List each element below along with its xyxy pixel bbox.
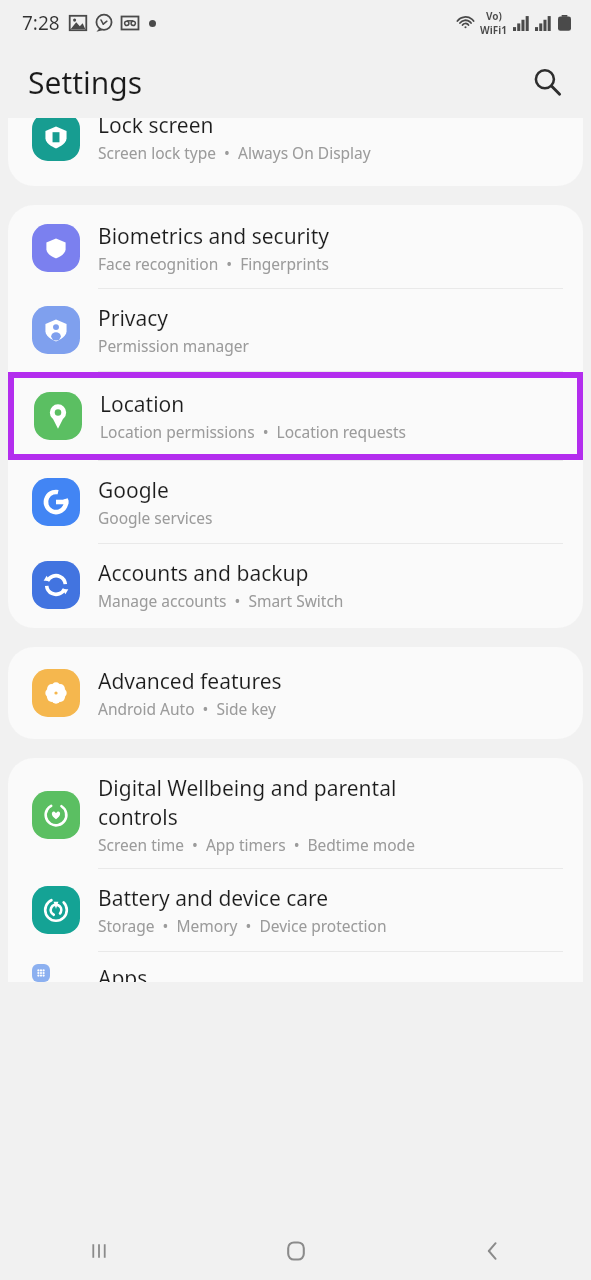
staticText: Face recognition • Fingerprints [98,253,330,274]
staticText: Settings [28,62,143,103]
staticText: Apps [98,964,148,982]
staticText: 7:28 [22,10,60,36]
button[interactable]: Biometrics and security [8,205,583,289]
button[interactable]: Battery and device care [8,869,583,952]
staticText: controls [98,803,178,832]
staticText: Location permissions • Location requests [100,421,406,442]
staticText: Biometrics and security [98,222,329,251]
staticText: Manage accounts • Smart Switch [98,590,344,611]
staticText: Location [100,390,185,419]
button[interactable]: Digital Wellbeing and parental [8,758,583,869]
staticText: Advanced features [98,667,282,696]
staticText: Screen time • App timers • Bedtime mode [98,834,415,855]
staticText: Battery and device care [98,884,329,913]
staticText: Screen lock type • Always On Display [98,142,371,163]
button[interactable]: Location [14,378,577,454]
button[interactable]: Home [197,1222,394,1280]
staticText: Google services [98,507,213,528]
button[interactable]: Google [8,461,583,544]
button[interactable]: Lock screen [8,118,583,186]
button[interactable]: Recent apps [0,1222,197,1280]
staticText: Google [98,476,169,505]
button[interactable]: Back [394,1222,591,1280]
staticText: Accounts and backup [98,559,309,588]
staticText: Lock screen [98,118,214,140]
staticText: Storage • Memory • Device protection [98,915,387,936]
button[interactable]: Search [525,60,569,104]
button[interactable]: Accounts and backup [8,544,583,628]
staticText: Digital Wellbeing and parental [98,774,397,803]
button[interactable]: Apps [8,952,583,982]
staticText: WiFi1 [480,23,507,37]
staticText: Vo) [486,9,502,23]
staticText: Permission manager [98,335,249,356]
button[interactable]: Privacy [8,289,583,372]
staticText: Privacy [98,304,169,333]
button[interactable]: Advanced features [8,647,583,739]
staticText: Android Auto • Side key [98,698,276,719]
